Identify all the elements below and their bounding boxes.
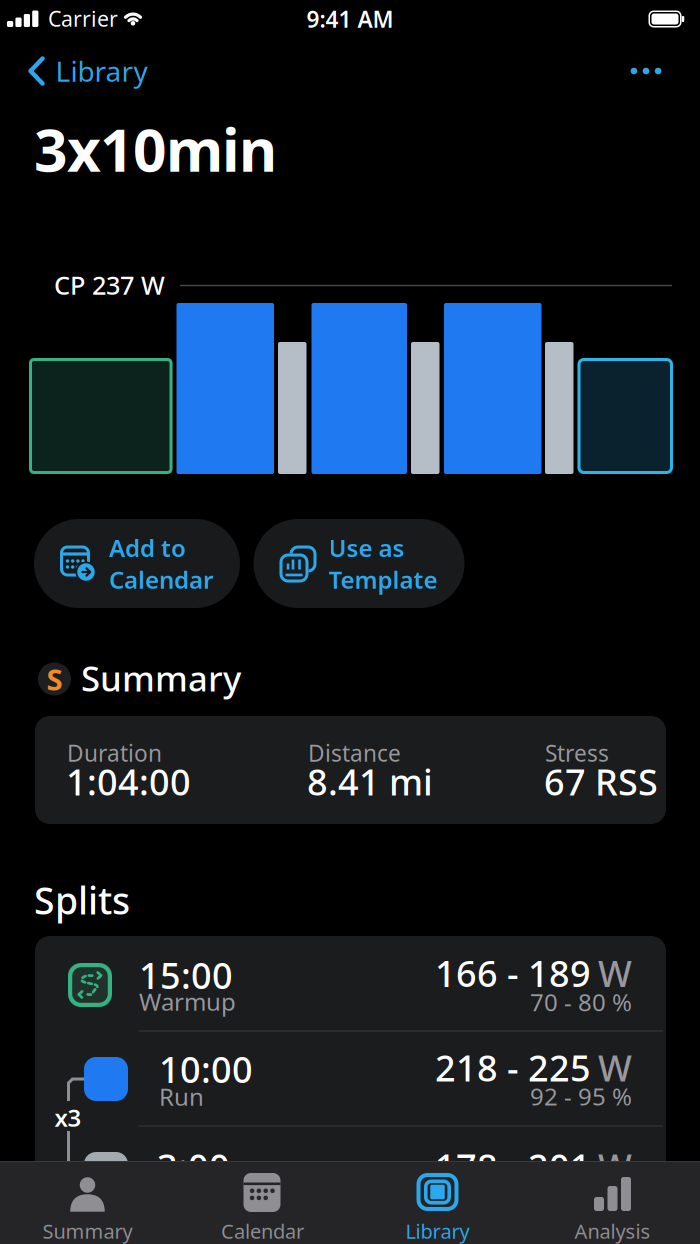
staticText: Warmup — [139, 986, 236, 1017]
button[interactable]: Library — [362, 1161, 512, 1244]
staticText: x3 — [54, 1102, 81, 1133]
staticText: W — [598, 1044, 632, 1091]
button[interactable]: Add to — [34, 519, 240, 608]
staticText: W — [598, 1143, 632, 1190]
staticText: S — [46, 659, 62, 698]
button[interactable]: More options — [622, 53, 670, 89]
staticText: Add to — [109, 532, 186, 563]
staticText: Analysis — [574, 1218, 650, 1244]
staticText: 166 - 189 — [435, 949, 591, 997]
staticText: Distance — [308, 738, 401, 768]
staticText: 178 - 201 — [435, 1143, 591, 1190]
staticText: Library — [405, 1218, 469, 1244]
staticText: 10:00 — [159, 1045, 253, 1093]
button[interactable]: Calendar — [187, 1161, 337, 1244]
staticText: 92 - 95 % — [530, 1080, 632, 1112]
staticText: 70 - 80 % — [530, 986, 632, 1018]
staticText: Stress — [545, 738, 609, 768]
staticText: Splits — [34, 875, 130, 925]
staticText: 3:00 — [157, 1143, 230, 1190]
button[interactable]: 10:00 — [35, 1033, 666, 1126]
staticText: W — [598, 949, 632, 997]
staticText: 15:00 — [139, 951, 233, 999]
staticText: Library — [55, 52, 147, 90]
staticText: Summary — [81, 655, 241, 701]
staticText: 67 RSS — [544, 758, 658, 805]
staticText: 9:41 AM — [306, 4, 393, 34]
staticText: 218 - 225 — [435, 1044, 591, 1091]
button[interactable]: Summary — [12, 1161, 162, 1244]
staticText: Template — [328, 563, 437, 595]
staticText: CP 237 W — [54, 268, 165, 302]
staticText: Calendar — [221, 1218, 304, 1244]
staticText: Use as — [328, 532, 404, 563]
button[interactable]: Use as — [253, 519, 464, 608]
staticText: Duration — [67, 738, 162, 768]
staticText: Run — [159, 1081, 204, 1112]
staticText: 8.41 mi — [307, 758, 433, 805]
button[interactable]: Analysis — [537, 1161, 687, 1244]
staticText: Summary — [42, 1218, 132, 1244]
staticText: 3x10min — [34, 110, 277, 188]
button[interactable]: Back to Library — [23, 49, 153, 93]
staticText: 1:04:00 — [66, 758, 191, 805]
staticText: Carrier — [48, 4, 118, 33]
staticText: Calendar — [109, 563, 213, 595]
button[interactable]: 15:00 — [35, 938, 666, 1033]
